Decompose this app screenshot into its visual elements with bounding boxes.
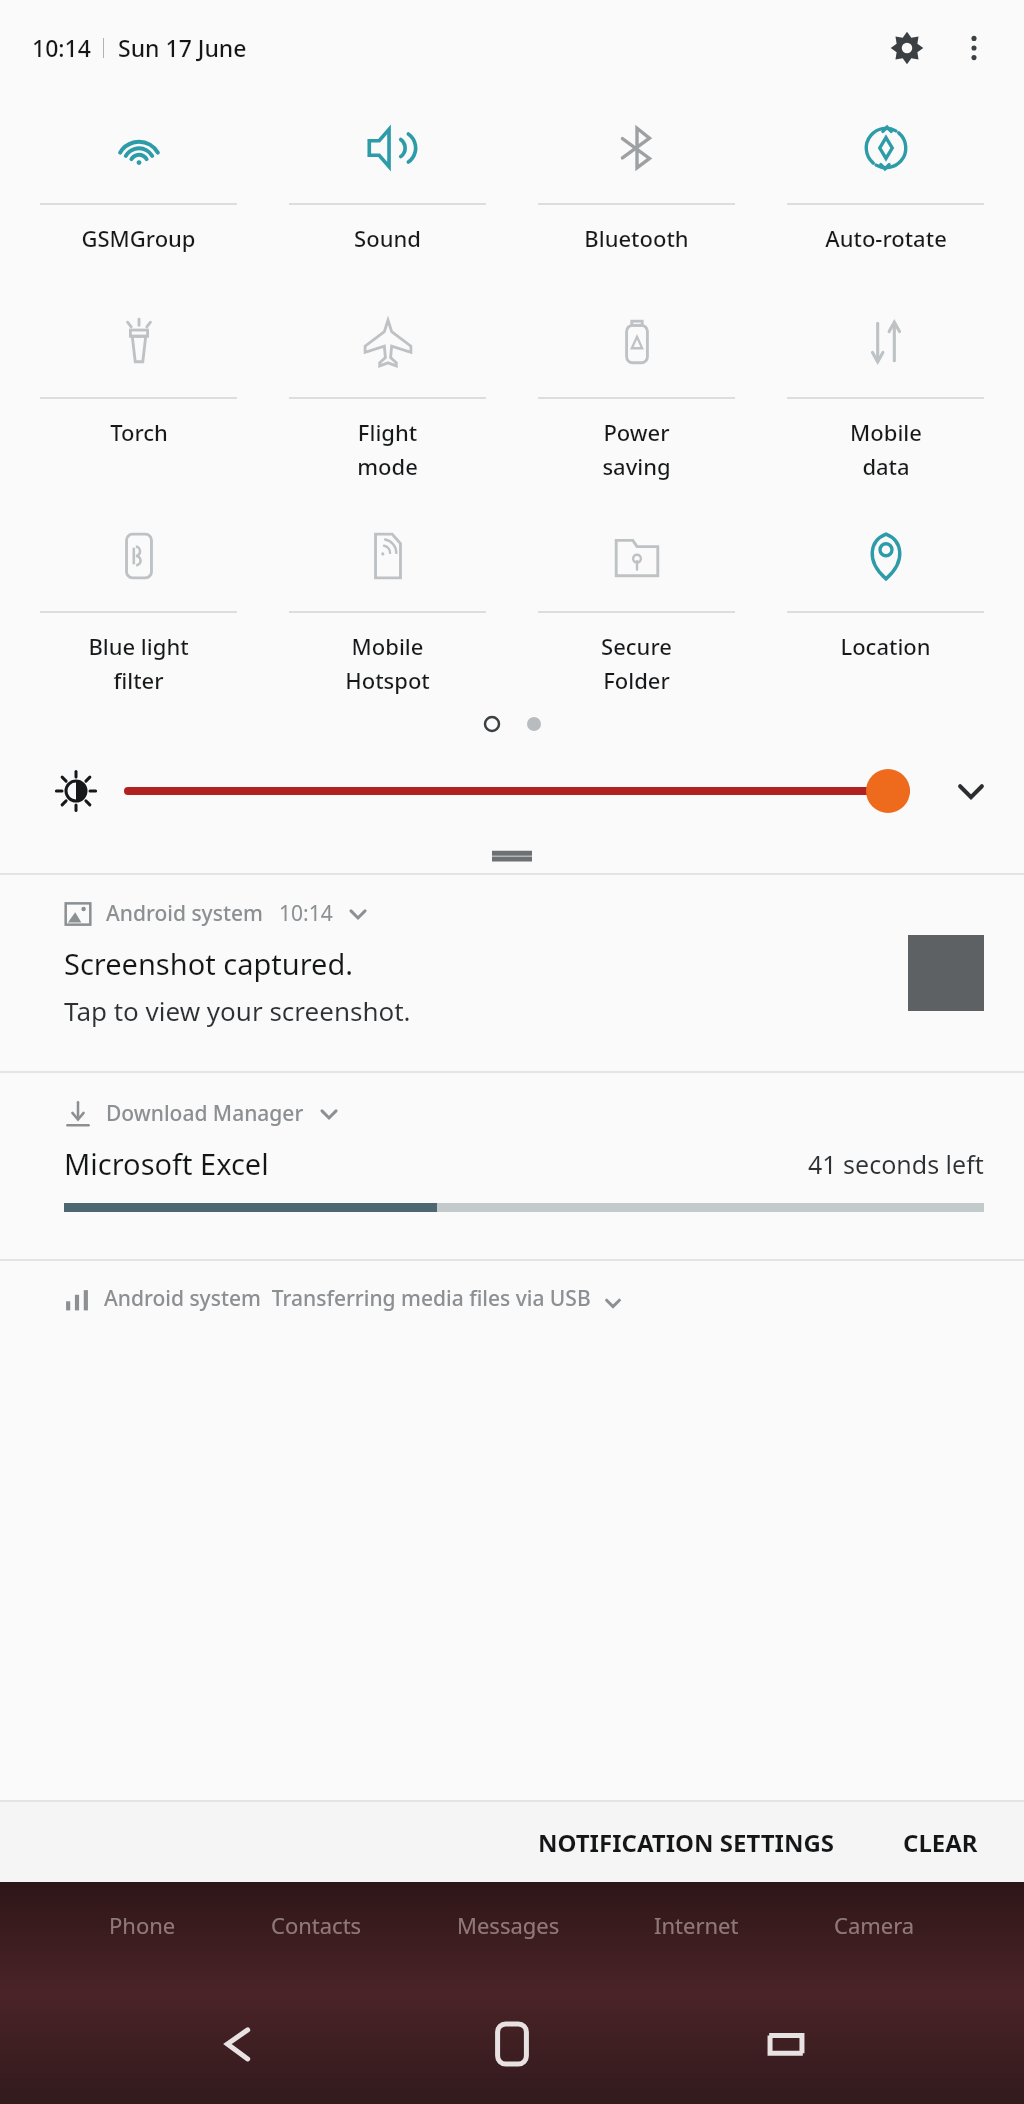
button[interactable]: Secure Folder <box>512 513 761 703</box>
button[interactable]: Mobile Hotspot <box>263 513 512 703</box>
button[interactable]: Mobile data <box>761 299 1010 489</box>
button[interactable]: Back <box>202 2008 274 2080</box>
staticText: Messages <box>457 1910 560 1940</box>
staticText: Mobile Hotspot <box>345 631 430 695</box>
button[interactable]: Messages <box>451 1904 566 1946</box>
staticText: CLEAR <box>903 1826 978 1859</box>
button[interactable]: GSMGroup <box>14 105 263 253</box>
staticText: GSMGroup <box>81 223 196 253</box>
button[interactable]: Settings <box>878 19 936 77</box>
staticText: 10:14 <box>32 32 91 63</box>
button[interactable]: Power saving <box>512 299 761 489</box>
staticText: Contacts <box>271 1910 362 1940</box>
button[interactable]: Internet <box>648 1904 745 1946</box>
button[interactable]: Camera <box>828 1904 921 1946</box>
button[interactable]: Blue light filter <box>14 513 263 703</box>
staticText: Torch <box>110 417 168 447</box>
button[interactable]: Expand brightness <box>0 753 1024 829</box>
staticText: Camera <box>834 1910 915 1940</box>
button[interactable]: Contacts <box>265 1904 368 1946</box>
staticText: Screenshot captured. <box>64 944 354 983</box>
staticText: Blue light filter <box>88 631 189 695</box>
button[interactable]: Sound <box>263 105 512 253</box>
button[interactable]: Home <box>476 2008 548 2080</box>
button[interactable]: CLEAR <box>881 1808 1000 1877</box>
staticText: Mobile data <box>850 417 922 481</box>
staticText: Flight mode <box>357 417 418 481</box>
staticText: Location <box>840 631 931 661</box>
staticText: Auto-rotate <box>825 223 947 253</box>
button[interactable]: Recents <box>750 2008 822 2080</box>
button[interactable]: Auto-rotate <box>761 105 1010 253</box>
button[interactable]: More options <box>948 22 1000 74</box>
staticText: Power saving <box>602 417 671 481</box>
button[interactable]: Android system Transferring media files … <box>0 1261 1024 1313</box>
button[interactable]: Location <box>761 513 1010 703</box>
staticText: Android system <box>106 899 263 928</box>
staticText: 10:14 <box>279 899 333 928</box>
staticText: 41 seconds left <box>808 1147 984 1181</box>
staticText: Android system Transferring media files … <box>104 1284 591 1313</box>
staticText: Sun 17 June <box>118 32 247 63</box>
staticText: Internet <box>654 1910 739 1940</box>
button[interactable]: Download Manager <box>0 1073 1024 1259</box>
button[interactable]: Phone <box>103 1904 182 1946</box>
staticText: Sound <box>354 223 421 253</box>
staticText: Secure Folder <box>601 631 672 695</box>
button[interactable]: Torch <box>14 299 263 489</box>
button[interactable]: Expand brightness <box>940 760 1002 822</box>
button[interactable]: Bluetooth <box>512 105 761 253</box>
button[interactable]: Android system <box>0 875 1024 1071</box>
button[interactable]: NOTIFICATION SETTINGS <box>516 1808 857 1877</box>
staticText: Bluetooth <box>584 223 689 253</box>
button[interactable]: Flight mode <box>263 299 512 489</box>
staticText: Phone <box>109 1910 176 1940</box>
staticText: Microsoft Excel <box>64 1144 269 1183</box>
staticText: Download Manager <box>106 1099 304 1128</box>
staticText: NOTIFICATION SETTINGS <box>538 1826 835 1859</box>
staticText: Tap to view your screenshot. <box>64 993 411 1028</box>
